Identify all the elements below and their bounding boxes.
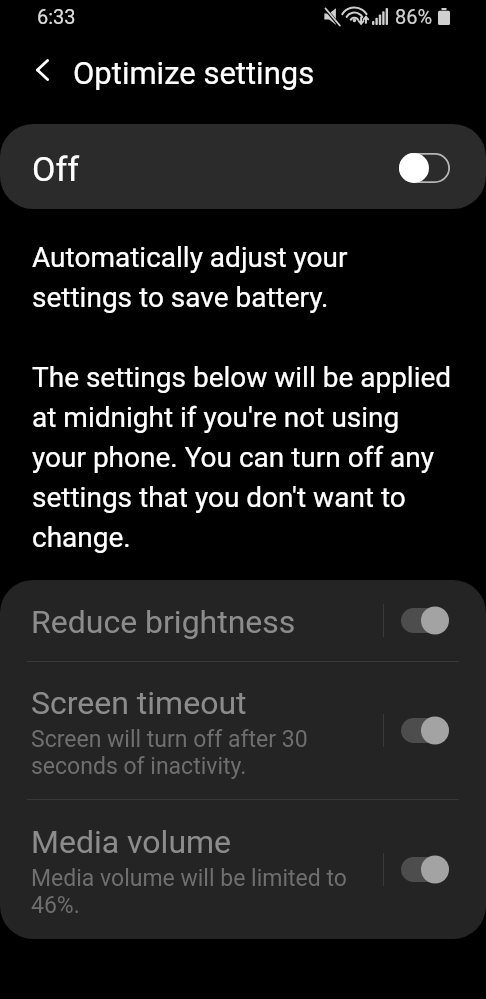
staticText: Screen timeout (31, 684, 247, 722)
button[interactable]: Screen timeout (0, 662, 486, 799)
other: Optimize settings, off (399, 153, 450, 183)
button[interactable]: Navigate up (20, 48, 64, 92)
staticText: Reduce brightness (31, 603, 296, 641)
staticText: Screen will turn off after 30 seconds of… (31, 726, 376, 780)
staticText: 6:33 (37, 5, 76, 28)
other: Reduce brightness (401, 606, 449, 635)
button[interactable]: Media volume (0, 800, 486, 939)
button[interactable]: Off (0, 124, 486, 209)
staticText: Off (32, 149, 80, 189)
staticText: Media volume (31, 823, 232, 861)
staticText: Optimize settings (73, 55, 315, 91)
staticText: 86% (395, 5, 433, 28)
button[interactable]: Reduce brightness (0, 580, 486, 661)
staticText: Automatically adjust your settings to sa… (32, 235, 452, 555)
other: Media volume (401, 855, 449, 884)
staticText: Media volume will be limited to 46%. (31, 865, 376, 919)
other: Screen timeout (401, 716, 449, 745)
